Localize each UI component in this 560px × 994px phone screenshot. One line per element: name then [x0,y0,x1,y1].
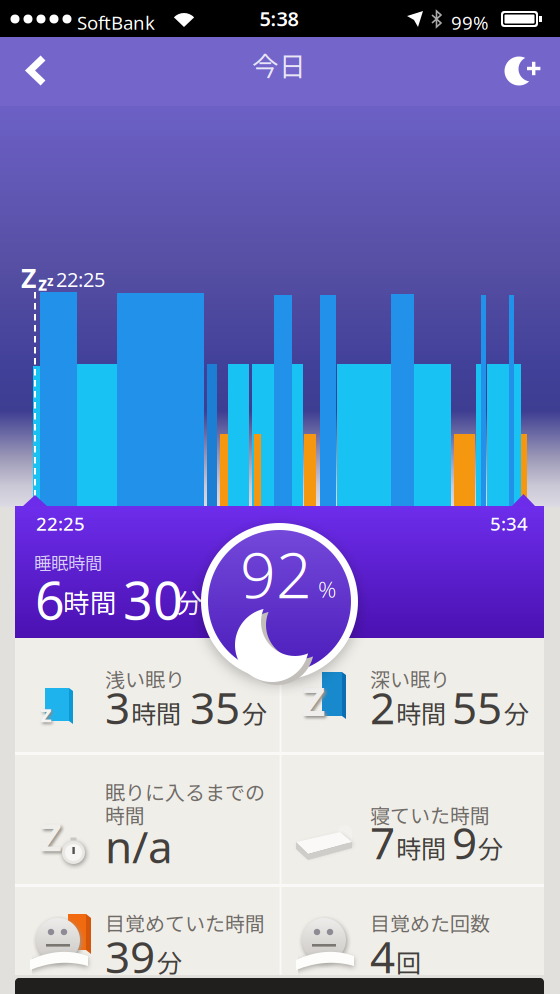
staticText: 9 [452,813,477,871]
staticText: 99% [451,10,489,35]
staticText: 分 [157,943,182,980]
staticText: 分 [478,829,503,866]
staticText: 寝ていた時間 [370,800,490,829]
staticText: 浅い眠り [105,664,185,693]
staticText: 時間 [131,694,181,731]
staticText: 分 [504,694,529,731]
staticText: 35 [190,678,240,736]
staticText: z [38,271,47,296]
staticText: n/a [105,817,173,875]
staticText: 回 [396,943,421,980]
staticText: 4 [370,927,395,985]
staticText: 分 [176,582,203,621]
button[interactable]: Back [0,37,60,106]
staticText: 5:38 [259,5,298,32]
staticText: 深い眠り [370,664,450,693]
staticText: SoftBank [77,10,155,35]
staticText: 6 [35,565,65,634]
staticText: 目覚めた回数 [370,908,490,937]
staticText: 目覚めていた時間 [105,908,265,937]
staticText: Z [40,812,62,862]
staticText: 92 [240,532,312,616]
staticText: Z [21,260,36,295]
staticText: 22:25 [56,266,105,293]
staticText: 時間 [396,694,446,731]
staticText: 3 [105,678,130,736]
staticText: 今日 [252,45,306,84]
staticText: Z [302,674,325,727]
staticText: 22:25 [36,511,85,536]
staticText: 時間 [396,829,446,866]
staticText: 時間 [63,582,117,621]
staticText: 55 [452,678,502,736]
staticText: % [318,574,336,604]
staticText: 7 [370,813,395,871]
staticText: 39 [105,927,155,985]
staticText: 分 [242,694,267,731]
staticText: z [47,272,54,290]
staticText: 時間 [105,800,145,829]
button[interactable]: Add sleep [498,37,554,106]
staticText: z [40,697,52,729]
staticText: 5:34 [490,511,528,536]
staticText: 眠りに入るまでの [105,777,265,806]
staticText: 30 [123,565,183,634]
staticText: 睡眠時間 [34,550,102,575]
staticText: 2 [370,678,395,736]
